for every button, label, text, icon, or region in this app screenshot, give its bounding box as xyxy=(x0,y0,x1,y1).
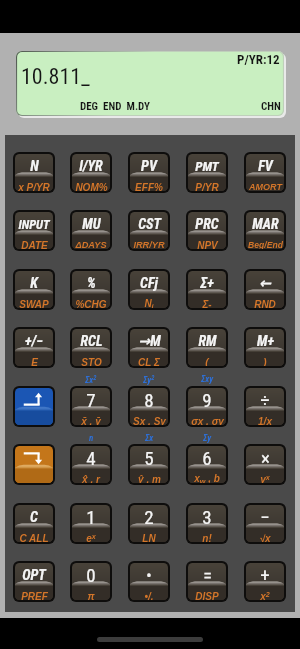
staticText: ÷ xyxy=(260,389,270,411)
staticText: →M xyxy=(138,333,161,350)
staticText: 9 xyxy=(202,389,212,411)
button[interactable]: →M xyxy=(130,329,168,366)
staticText: DISP xyxy=(195,591,219,600)
button[interactable]: 3 xyxy=(188,505,226,542)
staticText: C ALL xyxy=(19,533,49,542)
button[interactable]: % xyxy=(72,271,110,308)
staticText: M+ xyxy=(257,333,274,350)
staticText: xw , b xyxy=(194,473,220,483)
staticText: 3 xyxy=(202,506,212,528)
staticText: 7 xyxy=(86,389,96,411)
staticText: NOM% xyxy=(75,182,108,191)
staticText: Beg/End xyxy=(248,240,283,249)
staticText: 1/x xyxy=(258,416,272,425)
button[interactable]: PMT xyxy=(188,154,226,191)
button[interactable]: Σ+ xyxy=(188,271,226,308)
staticText: 4 xyxy=(86,447,96,469)
staticText: Σ+ xyxy=(200,275,214,292)
staticText: ŷ , m xyxy=(138,474,161,483)
staticText: 10.811_ xyxy=(21,64,91,90)
staticText: Σy xyxy=(203,433,212,444)
button[interactable]: RM xyxy=(188,329,226,366)
staticText: PV xyxy=(141,158,157,175)
button[interactable]: 4 xyxy=(72,446,110,483)
button[interactable]: INPUT xyxy=(15,212,53,249)
staticText: ) xyxy=(263,357,267,366)
staticText: σx , σy xyxy=(191,416,224,425)
button[interactable]: PV xyxy=(130,154,168,191)
staticText: RCL xyxy=(80,333,103,350)
button[interactable]: 6 xyxy=(188,446,226,483)
button[interactable]: 1 xyxy=(72,505,110,542)
button[interactable]: Enter xyxy=(15,388,53,425)
staticText: Σ- xyxy=(202,299,212,308)
staticText: n! xyxy=(202,533,212,542)
staticText: +/− xyxy=(25,333,43,350)
staticText: PMT xyxy=(195,159,219,174)
staticText: •/, xyxy=(144,591,154,600)
button[interactable]: I/YR xyxy=(72,154,110,191)
button[interactable]: ÷ xyxy=(246,388,284,425)
button[interactable]: • xyxy=(130,563,168,600)
staticText: PRC xyxy=(195,216,219,233)
button[interactable]: MU xyxy=(72,212,110,249)
staticText: CFj xyxy=(140,275,158,292)
button[interactable]: = xyxy=(188,563,226,600)
staticText: K xyxy=(30,275,38,292)
staticText: I/YR xyxy=(79,158,103,175)
button[interactable]: Display 10.811 xyxy=(16,51,284,116)
button[interactable]: M+ xyxy=(246,329,284,366)
button[interactable]: × xyxy=(246,446,284,483)
staticText: Σy2 xyxy=(143,374,155,385)
staticText: IRR/YR xyxy=(133,240,165,249)
button[interactable]: Swap xyxy=(15,446,53,483)
button[interactable]: +/− xyxy=(15,329,53,366)
staticText: × xyxy=(261,447,270,469)
staticText: CL Σ xyxy=(138,357,160,366)
staticText: LN xyxy=(142,533,156,542)
button[interactable]: K xyxy=(15,271,53,308)
button[interactable]: 0 xyxy=(72,563,110,600)
button[interactable]: C xyxy=(15,505,53,542)
staticText: C xyxy=(30,509,38,526)
staticText: %CHG xyxy=(75,299,107,308)
staticText: INPUT xyxy=(18,217,50,232)
staticText: OPT xyxy=(22,567,46,584)
button[interactable]: + xyxy=(246,563,284,600)
staticText: Sx , Sy xyxy=(133,416,166,425)
staticText: Σxy xyxy=(201,374,214,385)
button[interactable]: MAR xyxy=(246,212,284,249)
button[interactable]: 9 xyxy=(188,388,226,425)
staticText: SWAP xyxy=(19,299,49,308)
staticText: E xyxy=(31,357,38,366)
button[interactable]: OPT xyxy=(15,563,53,600)
staticText: x̂ , r xyxy=(82,474,100,483)
staticText: = xyxy=(203,565,212,586)
staticText: 8 xyxy=(144,389,154,411)
button[interactable]: ← xyxy=(246,271,284,308)
button[interactable]: 7 xyxy=(72,388,110,425)
staticText: π xyxy=(87,591,95,600)
button[interactable]: N xyxy=(15,154,53,191)
staticText: Nj xyxy=(144,298,154,308)
button[interactable]: PRC xyxy=(188,212,226,249)
staticText: Σx2 xyxy=(85,374,97,385)
button[interactable]: 2 xyxy=(130,505,168,542)
button[interactable]: CFj xyxy=(130,271,168,308)
button[interactable]: − xyxy=(246,505,284,542)
staticText: AMORT xyxy=(249,182,282,191)
staticText: P/YR xyxy=(195,182,219,191)
staticText: ( xyxy=(205,357,209,366)
staticText: STO xyxy=(81,357,102,366)
staticText: NPV xyxy=(197,240,218,249)
staticText: 5 xyxy=(144,447,154,469)
staticText: 2 xyxy=(144,506,154,528)
staticText: n xyxy=(89,433,94,444)
button[interactable]: RCL xyxy=(72,329,110,366)
button[interactable]: 8 xyxy=(130,388,168,425)
button[interactable]: FV xyxy=(246,154,284,191)
button[interactable]: CST xyxy=(130,212,168,249)
staticText: Σx xyxy=(145,433,154,444)
staticText: DEG END M.DY xyxy=(80,100,151,113)
button[interactable]: 5 xyxy=(130,446,168,483)
